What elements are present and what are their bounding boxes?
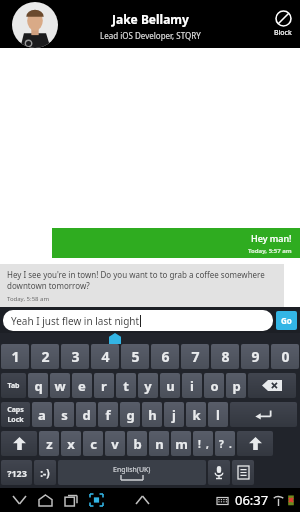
button[interactable]: Home <box>34 489 56 511</box>
button[interactable]: k <box>186 402 206 427</box>
staticText: 0 <box>281 347 290 366</box>
staticText: q <box>34 377 43 395</box>
staticText: f <box>105 406 111 424</box>
staticText: j <box>172 406 176 424</box>
staticText: Hey man! <box>251 232 292 244</box>
button[interactable]: j <box>164 402 184 427</box>
button[interactable]: Go <box>276 311 297 330</box>
staticText: m <box>175 435 188 453</box>
button[interactable]: u <box>160 373 180 398</box>
button[interactable]: 3 <box>61 344 89 369</box>
button[interactable]: x <box>61 431 81 456</box>
button[interactable]: q <box>28 373 48 398</box>
button[interactable]: Shift <box>237 431 273 456</box>
button[interactable]: Enter <box>230 402 297 427</box>
staticText: 3 <box>71 347 80 366</box>
staticText: 4 <box>101 347 110 366</box>
button[interactable]: ? . <box>215 431 235 456</box>
button[interactable]: 6 <box>151 344 179 369</box>
staticText: Jake Bellamy <box>112 11 189 27</box>
staticText: x <box>67 435 75 453</box>
button[interactable]: t <box>116 373 136 398</box>
staticText: :-) <box>40 466 50 480</box>
staticText: v <box>111 435 119 453</box>
staticText: l <box>216 406 220 424</box>
button[interactable]: i <box>182 373 202 398</box>
button[interactable]: s <box>54 402 74 427</box>
button[interactable]: Space <box>58 460 206 485</box>
button[interactable]: 2 <box>31 344 59 369</box>
button[interactable]: e <box>72 373 92 398</box>
button[interactable]: 4 <box>91 344 119 369</box>
staticText: n <box>155 435 164 453</box>
staticText: i <box>190 377 194 395</box>
button[interactable]: o <box>204 373 224 398</box>
staticText: h <box>148 406 157 424</box>
button[interactable]: Contact photo <box>12 2 58 48</box>
button[interactable]: Block <box>274 10 292 38</box>
staticText: Hey I see you're in town! Do you want to… <box>7 269 277 291</box>
button[interactable]: v <box>105 431 125 456</box>
button[interactable]: b <box>127 431 147 456</box>
staticText: Yeah I just flew in last night <box>11 314 140 328</box>
button[interactable]: d <box>76 402 96 427</box>
staticText: ? . <box>219 437 232 451</box>
staticText: d <box>82 406 91 424</box>
staticText: Lead iOS Developer, STQRY <box>100 30 201 41</box>
staticText: e <box>78 377 86 395</box>
button[interactable]: Back <box>8 489 30 511</box>
staticText: Today, 5:57 am <box>248 247 292 255</box>
button[interactable]: ?123 <box>1 460 32 485</box>
button[interactable]: w <box>50 373 70 398</box>
button[interactable]: a <box>32 402 52 427</box>
staticText: English(UK) <box>113 465 151 475</box>
button[interactable]: Shift <box>1 431 37 456</box>
button[interactable]: Hey I see you're in town! Do you want to… <box>0 264 284 307</box>
button[interactable]: 1 <box>1 344 29 369</box>
button[interactable]: Settings <box>232 460 254 485</box>
button[interactable]: Screenshot <box>85 489 107 511</box>
staticText: 9 <box>251 347 260 366</box>
staticText: b <box>133 435 142 453</box>
button[interactable]: z <box>39 431 59 456</box>
button[interactable]: l <box>208 402 228 427</box>
staticText: Today, 5:58 am <box>7 295 50 303</box>
button[interactable]: Backspace <box>248 373 296 398</box>
staticText: 1 <box>11 347 20 366</box>
staticText: u <box>166 377 175 395</box>
button[interactable]: Tab <box>1 373 26 398</box>
staticText: Go <box>281 315 292 326</box>
staticText: t <box>123 377 129 395</box>
button[interactable]: ! , <box>193 431 213 456</box>
staticText: o <box>210 377 219 395</box>
button[interactable]: 0 <box>271 344 299 369</box>
button[interactable]: h <box>142 402 162 427</box>
staticText: 5 <box>131 347 140 366</box>
button[interactable]: :-) <box>34 460 56 485</box>
button[interactable]: Hey man! <box>52 228 300 258</box>
button[interactable]: 5 <box>121 344 149 369</box>
button[interactable]: 7 <box>181 344 209 369</box>
staticText: 7 <box>191 347 200 366</box>
button[interactable]: r <box>94 373 114 398</box>
button[interactable]: 9 <box>241 344 269 369</box>
button[interactable]: Voice input <box>208 460 230 485</box>
button[interactable]: m <box>171 431 191 456</box>
button[interactable]: f <box>98 402 118 427</box>
button[interactable]: Caps Lock <box>1 402 30 427</box>
staticText: ?123 <box>7 467 27 479</box>
button[interactable]: p <box>226 373 246 398</box>
button[interactable]: 8 <box>211 344 239 369</box>
button[interactable]: Recent apps <box>60 489 82 511</box>
staticText: g <box>126 406 135 424</box>
button[interactable]: y <box>138 373 158 398</box>
staticText: y <box>144 377 152 395</box>
button[interactable]: Hide keyboard <box>131 489 153 511</box>
button[interactable]: g <box>120 402 140 427</box>
staticText: Tab <box>7 381 20 391</box>
staticText: z <box>46 435 53 453</box>
staticText: k <box>192 406 201 424</box>
button[interactable]: Yeah I just flew in last night <box>3 310 273 331</box>
button[interactable]: c <box>83 431 103 456</box>
button[interactable]: n <box>149 431 169 456</box>
